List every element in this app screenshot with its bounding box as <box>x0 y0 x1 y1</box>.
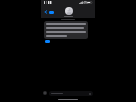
button[interactable] <box>45 40 50 43</box>
button[interactable]: Contact profile <box>64 7 73 17</box>
button[interactable] <box>44 21 88 39</box>
button[interactable]: Add attachment <box>43 91 47 95</box>
button[interactable]: Back <box>43 9 55 15</box>
button[interactable]: Record audio <box>49 91 93 96</box>
